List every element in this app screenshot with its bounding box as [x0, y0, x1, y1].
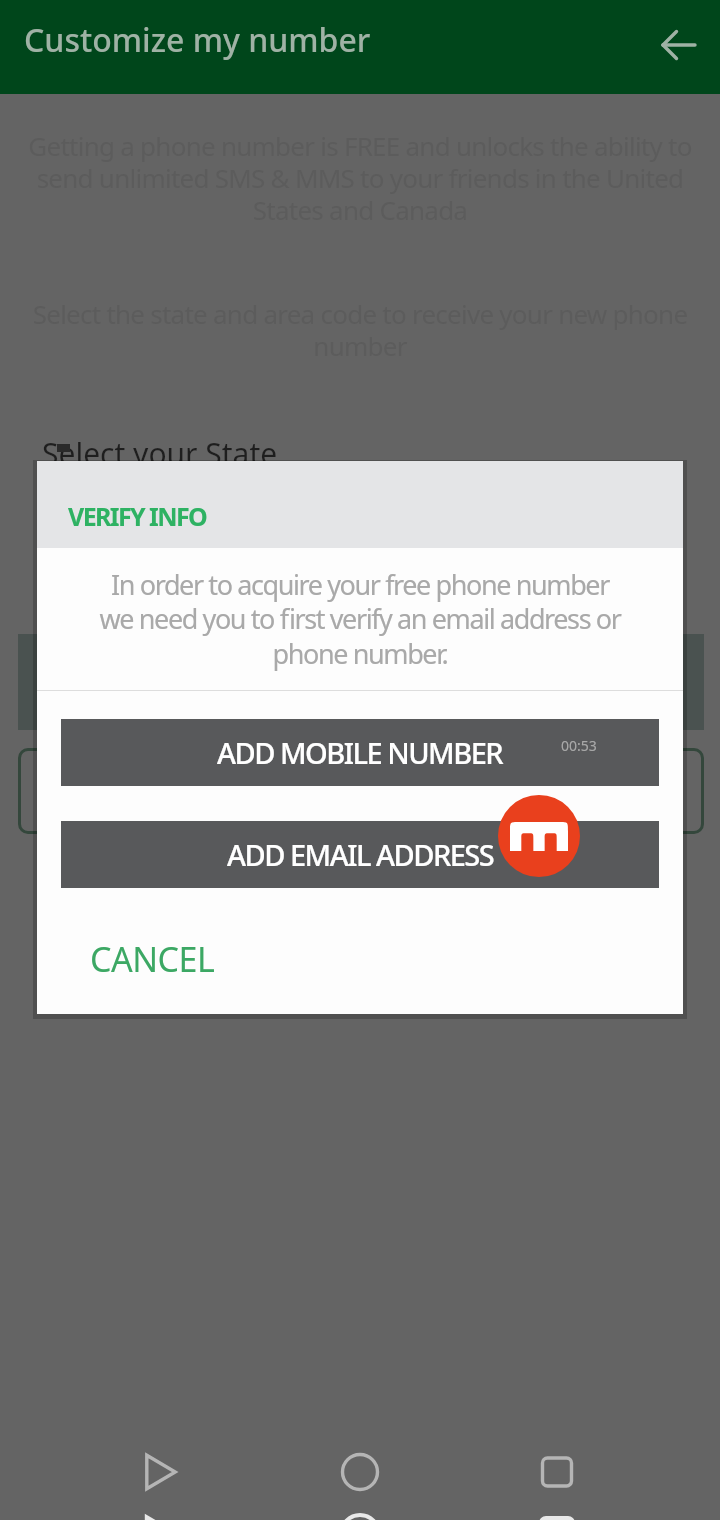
button[interactable]: ADD EMAIL ADDRESS — [61, 821, 659, 888]
button[interactable]: Back — [630, 2, 720, 92]
button[interactable]: Home — [320, 1432, 400, 1512]
button[interactable]: CANCEL — [37, 929, 683, 989]
button[interactable]: Recents — [517, 1432, 597, 1512]
button[interactable]: Open messaging app — [498, 795, 580, 877]
button[interactable]: Back — [120, 1432, 200, 1512]
staticText: 00:53 — [561, 736, 597, 755]
staticText: ADD MOBILE NUMBER — [217, 733, 503, 772]
button[interactable]: Select area code — [18, 748, 704, 834]
staticText: In order to acquire your free phone numb… — [59, 566, 661, 672]
staticText: CANCEL — [90, 936, 215, 982]
staticText: Select your State — [42, 433, 278, 474]
staticText: ADD EMAIL ADDRESS — [227, 835, 494, 874]
staticText: VERIFY INFO — [68, 499, 207, 533]
button[interactable]: ADD MOBILE NUMBER — [61, 719, 659, 786]
button[interactable]: Select your state — [18, 634, 704, 730]
staticText: Customize my number — [24, 18, 371, 62]
